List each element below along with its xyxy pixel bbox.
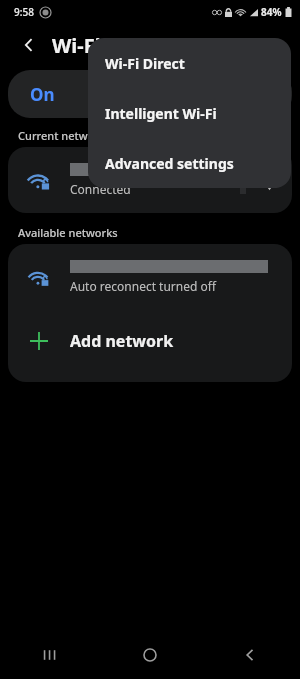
staticText: Advanced settings: [105, 154, 234, 173]
button[interactable]: Connected: [8, 147, 292, 213]
button[interactable]: Back: [12, 28, 46, 62]
staticText: On: [30, 83, 55, 106]
staticText: Wi-Fi: [52, 32, 101, 59]
staticText: 84%: [261, 5, 282, 19]
button[interactable]: Network settings: [246, 147, 292, 213]
staticText: Add network: [70, 330, 174, 352]
button[interactable]: Auto reconnect turned off: [8, 244, 292, 310]
button[interactable]: Home: [100, 631, 200, 679]
staticText: Wi-Fi Direct: [105, 54, 185, 73]
button[interactable]: Add network: [8, 310, 292, 372]
button[interactable]: Intelligent Wi-Fi: [88, 88, 291, 138]
staticText: 9:58: [14, 5, 34, 19]
staticText: Intelligent Wi-Fi: [105, 104, 217, 123]
button[interactable]: Back: [200, 631, 300, 679]
button[interactable]: Wi-Fi Direct: [88, 38, 291, 88]
staticText: Auto reconnect turned off: [70, 278, 217, 294]
staticText: Current network: [18, 128, 106, 143]
staticText: Available networks: [18, 225, 118, 240]
button[interactable]: On: [8, 70, 292, 118]
staticText: Connected: [70, 181, 131, 197]
button[interactable]: Recents: [0, 631, 100, 679]
button[interactable]: Advanced settings: [88, 138, 291, 188]
